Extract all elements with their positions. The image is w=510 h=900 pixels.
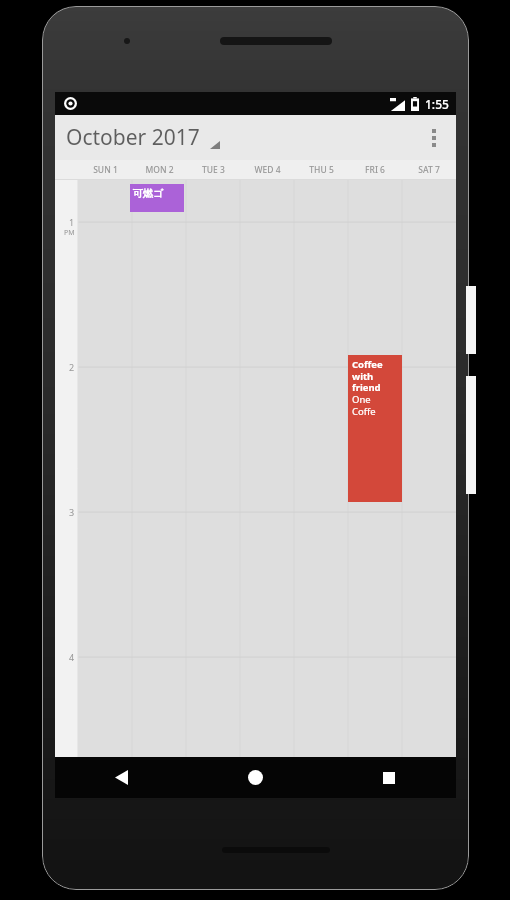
staticText: 可燃ゴ [133,187,164,200]
button[interactable]: Back [55,757,188,798]
button[interactable]: Recent apps [322,757,456,798]
button[interactable]: SUN 1 [78,160,132,180]
staticText: 4 [69,651,75,663]
staticText: October 2017 [66,123,200,152]
button[interactable]: MON 2 [132,160,186,180]
button[interactable]: SAT 7 [402,160,456,180]
button[interactable]: 可燃ゴ [130,184,184,212]
staticText: MON 2 [145,164,174,176]
staticText: PM [64,228,75,238]
staticText: THU 5 [309,164,334,176]
staticText: SAT 7 [418,164,440,176]
button[interactable]: WED 4 [240,160,294,180]
button[interactable]: Home [188,757,322,798]
staticText: FRI 6 [365,164,385,176]
staticText: 1:55 [425,96,449,112]
button[interactable]: THU 5 [294,160,348,180]
button[interactable]: Coffee with friend [348,355,402,502]
staticText: TUE 3 [202,164,225,176]
staticText: 1 [69,216,75,228]
staticText: Coffee with friend [352,358,383,393]
button[interactable]: FRI 6 [348,160,402,180]
staticText: 2 [69,361,75,373]
staticText: SUN 1 [93,164,118,176]
staticText: WED 4 [254,164,281,176]
button[interactable]: TUE 3 [186,160,240,180]
button[interactable]: October 2017 [66,123,220,152]
staticText: One Coffe [352,393,376,417]
staticText: 3 [69,506,75,518]
button[interactable]: More options [412,116,456,160]
